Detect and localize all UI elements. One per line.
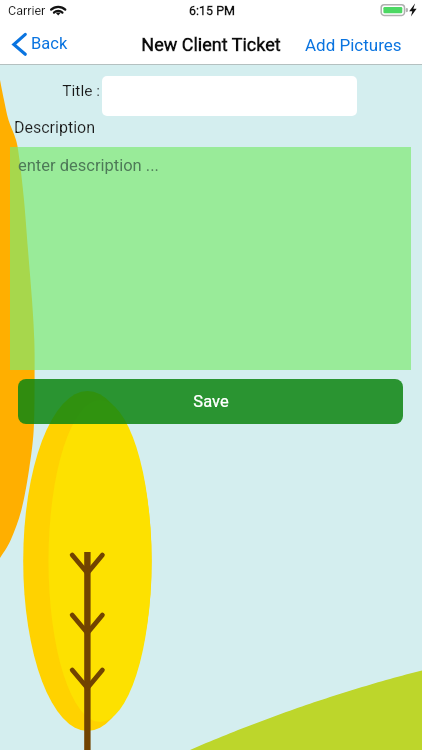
staticText: New Client Ticket <box>0 34 422 55</box>
staticText: 6:15 PM <box>189 3 236 18</box>
button[interactable]: Back <box>8 29 71 58</box>
staticText: Carrier <box>8 3 46 18</box>
staticText: Title : <box>0 82 100 100</box>
staticText: Description <box>14 118 95 137</box>
staticText: Save <box>193 392 229 411</box>
button[interactable]: enter description ... <box>10 147 411 370</box>
button[interactable]: Save <box>18 379 403 424</box>
staticText: Back <box>31 34 68 53</box>
button[interactable]: Add Pictures <box>285 29 422 61</box>
staticText: enter description ... <box>18 156 159 175</box>
